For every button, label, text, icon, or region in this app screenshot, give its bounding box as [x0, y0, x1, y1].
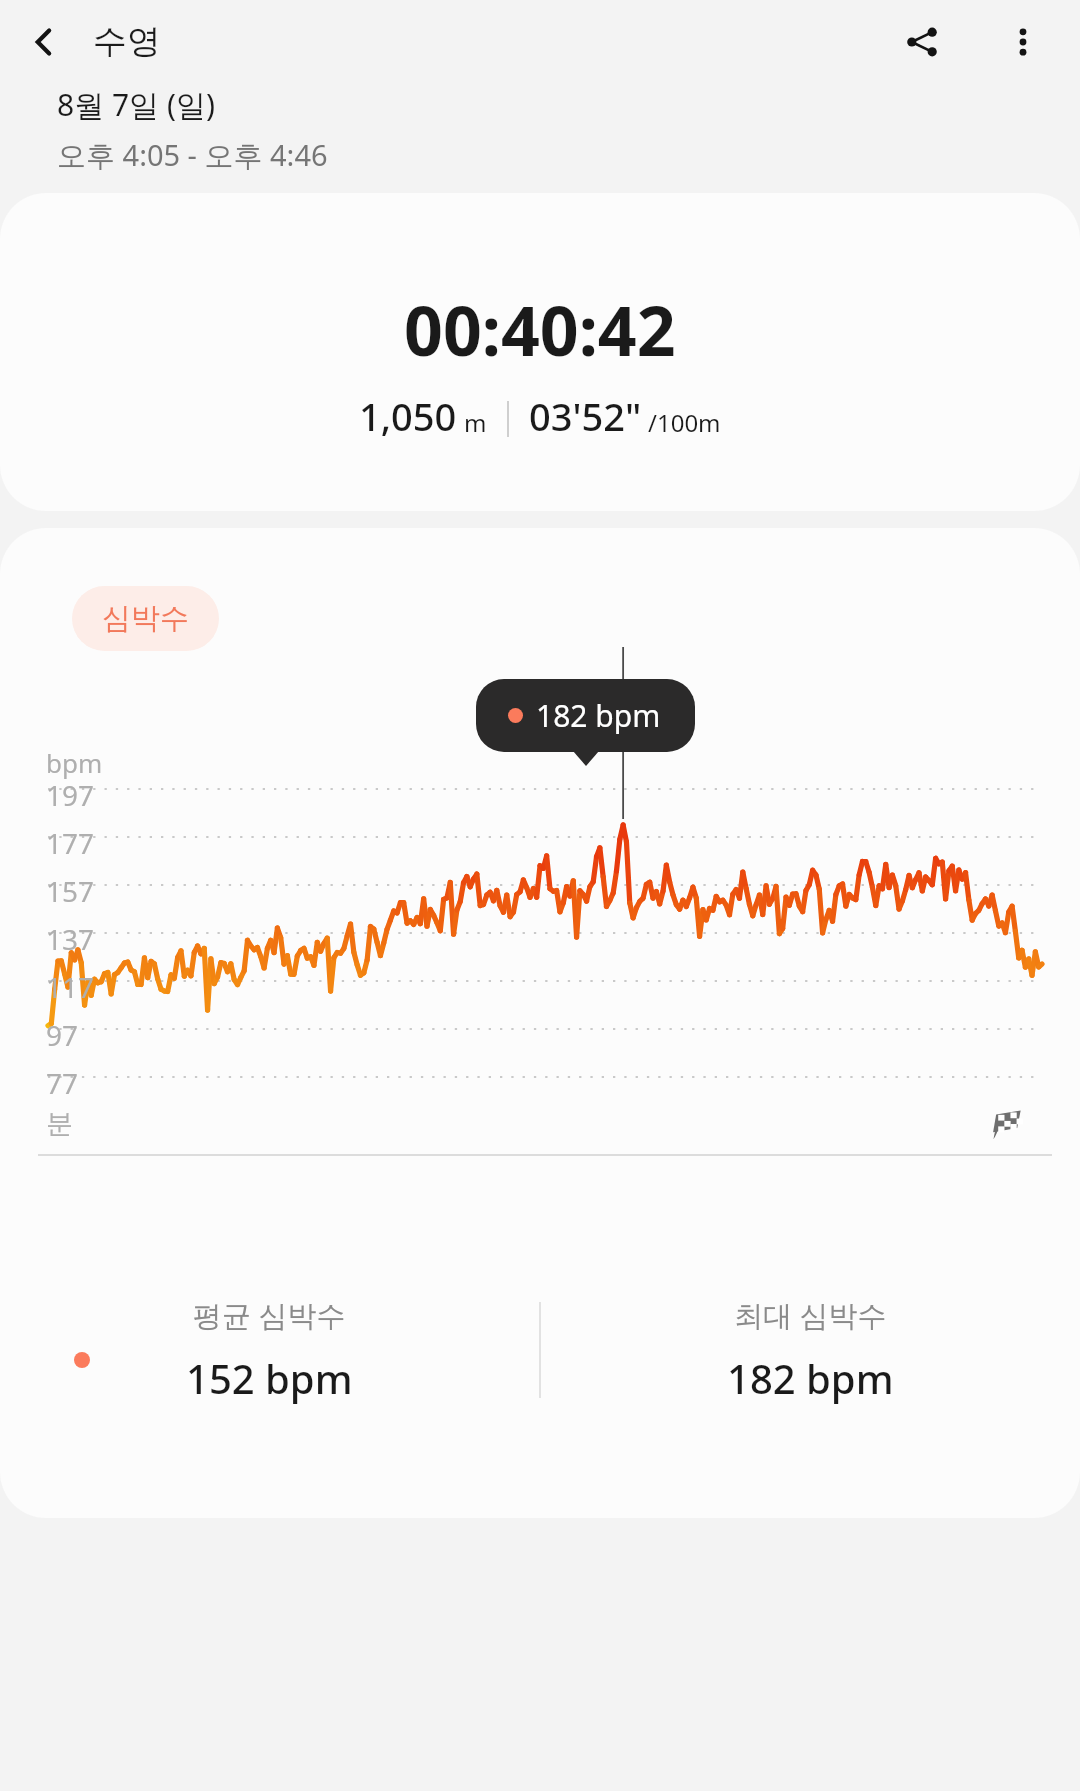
staticText: 03'52" [529, 390, 642, 442]
staticText: bpm [46, 745, 103, 780]
staticText: 1,050 [359, 390, 457, 442]
button[interactable]: 심박수 [72, 586, 219, 651]
staticText: 117 [46, 968, 95, 1006]
staticText: 평균 심박수 [193, 1295, 346, 1335]
staticText: 182 bpm [727, 1351, 894, 1405]
button[interactable]: 최대 심박수 [541, 1295, 1080, 1405]
staticText: 심박수 [102, 600, 189, 637]
button[interactable]: Finish flag [988, 1107, 1022, 1141]
staticText: m [464, 406, 487, 439]
button[interactable]: 00:40:42 [0, 193, 1080, 511]
staticText: 152 bpm [186, 1351, 353, 1405]
staticText: 8월 7일 (일) [57, 84, 215, 125]
staticText: 182 bpm [536, 695, 661, 736]
staticText: 177 [46, 824, 95, 862]
button[interactable]: 평균 심박수 [0, 1295, 539, 1405]
staticText: 157 [46, 872, 95, 910]
staticText: 00:40:42 [404, 283, 676, 376]
button[interactable]: More options [990, 9, 1056, 75]
staticText: 137 [46, 920, 95, 958]
staticText: 77 [46, 1064, 79, 1102]
button[interactable]: Back [14, 11, 76, 73]
button[interactable]: 심박수 [0, 528, 1080, 1518]
staticText: 97 [46, 1016, 79, 1054]
staticText: 197 [46, 776, 95, 814]
staticText: 분 [46, 1107, 73, 1141]
staticText: /100m [648, 406, 721, 439]
staticText: 수영 [93, 20, 161, 63]
staticText: 오후 4:05 - 오후 4:46 [57, 135, 328, 175]
button[interactable]: Share [889, 9, 955, 75]
staticText: 최대 심박수 [734, 1295, 887, 1335]
